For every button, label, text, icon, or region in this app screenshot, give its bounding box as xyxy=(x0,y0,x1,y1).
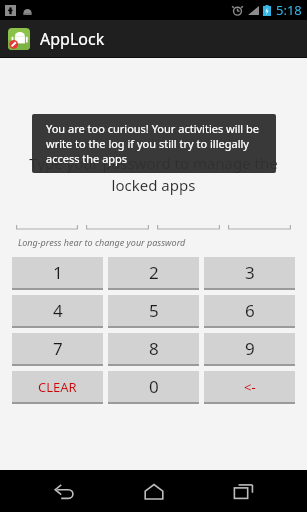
button[interactable]: 9 xyxy=(204,333,295,364)
button[interactable]: 3 xyxy=(204,257,295,288)
button[interactable]: 0 xyxy=(108,371,199,402)
staticText: 2 xyxy=(149,261,159,284)
staticText: 8 xyxy=(149,337,159,360)
button[interactable]: Home xyxy=(129,474,179,508)
button[interactable]: 8 xyxy=(108,333,199,364)
button[interactable]: 4 xyxy=(12,295,103,326)
button[interactable]: Password digit xyxy=(157,218,220,230)
staticText: 1 xyxy=(53,261,63,284)
staticText: You are too curious! Your activities wil… xyxy=(46,121,262,166)
button[interactable]: Recent apps xyxy=(218,474,268,508)
button[interactable]: 5 xyxy=(108,295,199,326)
button[interactable]: Password digit xyxy=(86,218,149,230)
button[interactable]: <- xyxy=(204,371,295,402)
staticText: 3 xyxy=(245,261,255,284)
staticText: 5 xyxy=(149,299,159,322)
staticText: Type your password to manage the locked … xyxy=(18,153,289,196)
button[interactable]: Back xyxy=(39,474,89,508)
staticText: Long-press hear to change your password xyxy=(18,236,186,248)
button[interactable]: 7 xyxy=(12,333,103,364)
staticText: 4 xyxy=(53,299,63,322)
button[interactable]: Password digit xyxy=(228,218,291,230)
button[interactable]: 2 xyxy=(108,257,199,288)
button[interactable]: CLEAR xyxy=(12,371,103,402)
staticText: 7 xyxy=(53,337,63,360)
staticText: 6 xyxy=(245,299,255,322)
staticText: 9 xyxy=(245,337,255,360)
button[interactable]: 6 xyxy=(204,295,295,326)
button[interactable]: 1 xyxy=(12,257,103,288)
staticText: 0 xyxy=(149,375,159,398)
staticText: CLEAR xyxy=(38,378,77,396)
staticText: 5:18 xyxy=(276,1,302,19)
staticText: <- xyxy=(244,378,256,396)
button[interactable]: Password digit xyxy=(16,218,78,230)
staticText: AppLock xyxy=(40,28,105,50)
